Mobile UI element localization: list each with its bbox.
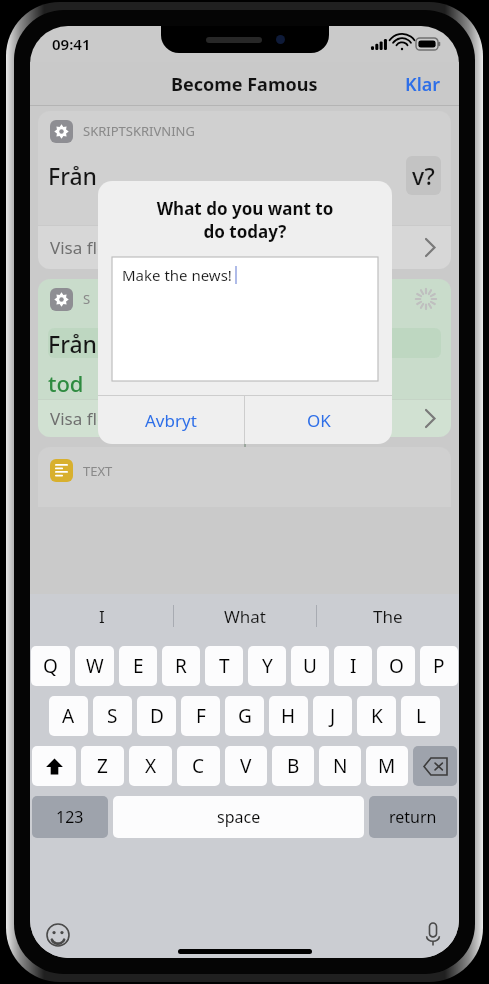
staticText: Visa fler [50, 236, 114, 259]
staticText: OK [307, 409, 331, 432]
button[interactable]: The [317, 594, 459, 638]
staticText: K [371, 703, 383, 729]
staticText: S [83, 290, 91, 308]
button[interactable]: R [162, 646, 200, 686]
button[interactable]: X [129, 746, 172, 786]
staticText: M [378, 753, 396, 779]
staticText: T [219, 653, 230, 679]
staticText: v? [412, 160, 435, 191]
button[interactable]: D [137, 696, 176, 736]
button[interactable]: Q [31, 646, 70, 686]
button[interactable]: G [225, 696, 264, 736]
staticText: I [350, 653, 357, 679]
button[interactable]: return [369, 796, 457, 838]
button[interactable]: Shift [32, 746, 76, 786]
staticText: J [330, 703, 336, 729]
staticText: E [133, 653, 144, 679]
staticText: SKRIPTSKRIVNING [83, 122, 195, 140]
staticText: V [240, 753, 252, 779]
button[interactable]: S [38, 279, 451, 437]
staticText: Y [262, 653, 273, 679]
button[interactable]: Avbryt [98, 396, 244, 444]
staticText: return [389, 806, 437, 828]
button[interactable]: 123 [32, 796, 108, 838]
button[interactable]: K [357, 696, 396, 736]
button[interactable]: What [174, 594, 316, 638]
button[interactable]: Dictate [425, 923, 441, 947]
button[interactable]: J [313, 696, 352, 736]
button[interactable]: space [113, 796, 364, 838]
button[interactable]: M [366, 746, 408, 786]
staticText: 123 [56, 806, 84, 828]
button[interactable]: E [119, 646, 157, 686]
button[interactable]: U [291, 646, 329, 686]
staticText: Klar [405, 72, 441, 97]
button[interactable]: Y [248, 646, 286, 686]
staticText: What [224, 605, 266, 628]
staticText: O [389, 653, 404, 679]
button[interactable]: Klar [387, 64, 459, 105]
staticText: F [196, 703, 206, 729]
staticText: P [433, 653, 445, 679]
staticText: Become Famous [171, 72, 318, 97]
staticText: C [192, 753, 205, 779]
button[interactable]: V [225, 746, 267, 786]
staticText: U [303, 653, 317, 679]
button[interactable]: C [177, 746, 220, 786]
staticText: Avbryt [145, 409, 197, 432]
staticText: Från [48, 160, 97, 191]
button[interactable]: Delete [413, 746, 457, 786]
button[interactable]: I [30, 594, 173, 638]
button[interactable]: L [401, 696, 440, 736]
button[interactable]: OK [245, 396, 392, 444]
button[interactable]: TEXT [38, 447, 451, 507]
button[interactable]: O [377, 646, 415, 686]
staticText: I [99, 605, 105, 628]
button[interactable]: Z [81, 746, 124, 786]
staticText: TEXT [83, 462, 113, 480]
staticText: 09:41 [52, 34, 91, 54]
button[interactable]: H [269, 696, 308, 736]
button[interactable]: S [93, 696, 132, 736]
staticText: S [107, 703, 118, 729]
button[interactable]: A [49, 696, 88, 736]
staticText: Visa fler [50, 407, 114, 430]
staticText: W [86, 653, 104, 679]
staticText: D [150, 703, 164, 729]
staticText: Z [97, 753, 108, 779]
staticText: X [145, 753, 157, 779]
staticText: A [62, 703, 75, 729]
button[interactable]: P [420, 646, 458, 686]
button[interactable]: W [75, 646, 114, 686]
staticText: N [333, 753, 348, 779]
staticText: Från [48, 328, 97, 359]
button[interactable]: I [334, 646, 372, 686]
button[interactable]: Visa fler [38, 399, 451, 437]
staticText: tod [48, 368, 84, 398]
button[interactable]: N [319, 746, 361, 786]
button[interactable]: Make the news! [112, 257, 378, 381]
button[interactable]: Emoji [46, 923, 70, 947]
staticText: Make the news! [122, 265, 232, 285]
staticText: R [175, 653, 187, 679]
staticText: space [217, 806, 261, 828]
staticText: G [238, 703, 252, 729]
staticText: The [373, 605, 403, 628]
staticText: B [287, 753, 300, 779]
staticText: H [281, 703, 296, 729]
button[interactable]: F [181, 696, 220, 736]
button[interactable]: B [272, 746, 314, 786]
staticText: Q [43, 653, 58, 679]
button[interactable]: T [205, 646, 243, 686]
staticText: L [416, 703, 426, 729]
button[interactable]: Visa fler [38, 225, 451, 269]
staticText: What do you want to do today? [114, 197, 376, 243]
button[interactable]: SKRIPTSKRIVNING [38, 111, 451, 269]
